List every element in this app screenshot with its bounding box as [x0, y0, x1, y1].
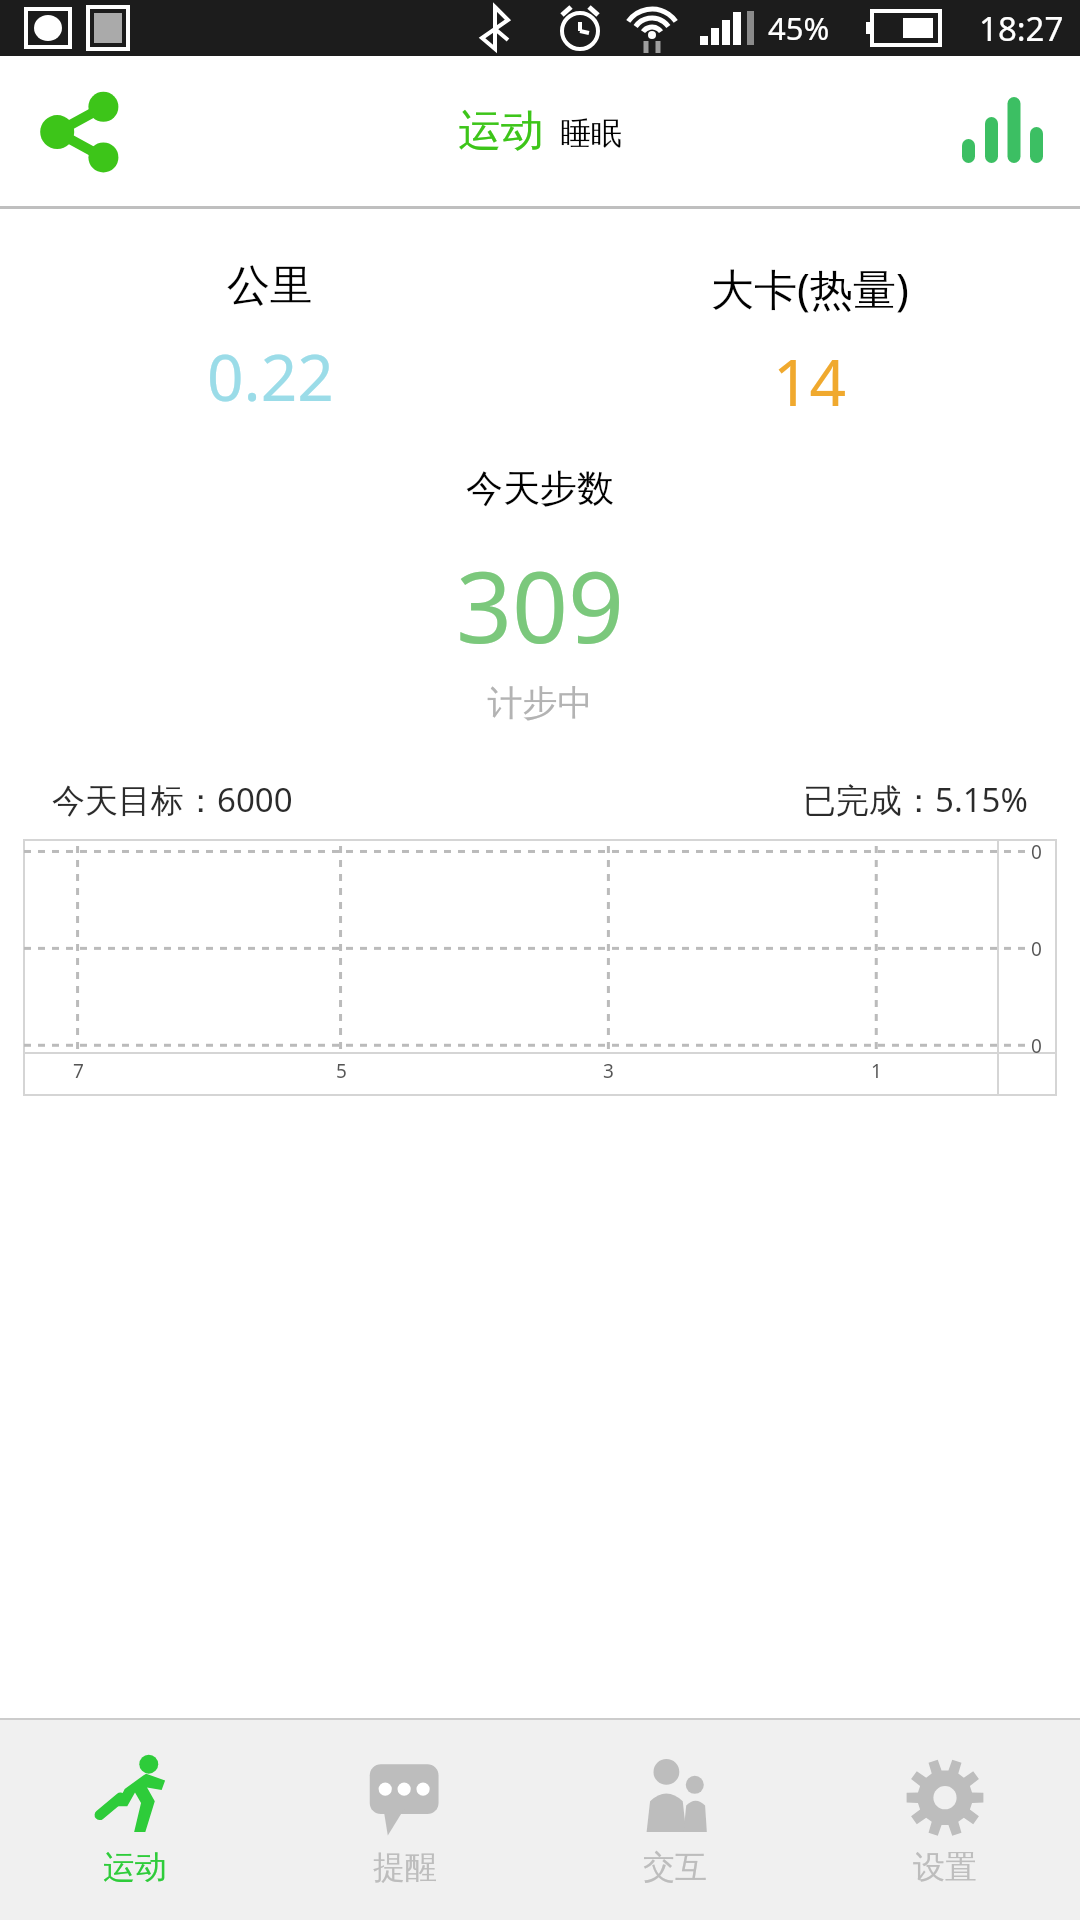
staticText: 大卡(热量) [711, 259, 909, 318]
staticText: 交互 [643, 1847, 707, 1887]
staticText: 今天目标：6000 [52, 777, 293, 822]
button[interactable]: Share [22, 76, 132, 186]
staticText: 0.22 [207, 333, 334, 420]
staticText: 14 [773, 338, 847, 425]
staticText: 309 [0, 538, 1080, 671]
staticText: 18:27 [979, 6, 1064, 51]
staticText: 0 [1031, 839, 1042, 865]
button[interactable]: 睡眠 [560, 114, 622, 153]
button[interactable]: Statistics [952, 81, 1052, 181]
staticText: 设置 [913, 1847, 977, 1887]
staticText: 计步中 [0, 681, 1080, 725]
staticText: 7 [73, 1058, 84, 1084]
staticText: 今天步数 [0, 465, 1080, 512]
button[interactable]: 提醒 [270, 1720, 540, 1920]
button[interactable]: 运动 [0, 1720, 270, 1920]
button[interactable]: 设置 [810, 1720, 1080, 1920]
staticText: 运动 [103, 1847, 167, 1887]
staticText: 3 [603, 1058, 614, 1084]
staticText: 1 [871, 1058, 882, 1084]
staticText: 公里 [227, 259, 313, 313]
staticText: 0 [1031, 1033, 1042, 1059]
staticText: 45% [768, 7, 830, 49]
staticText: 已完成：5.15% [803, 777, 1028, 822]
button[interactable]: 运动 [458, 104, 544, 158]
staticText: 5 [336, 1058, 347, 1084]
staticText: 提醒 [373, 1847, 437, 1887]
staticText: 0 [1031, 936, 1042, 962]
button[interactable]: 交互 [540, 1720, 810, 1920]
